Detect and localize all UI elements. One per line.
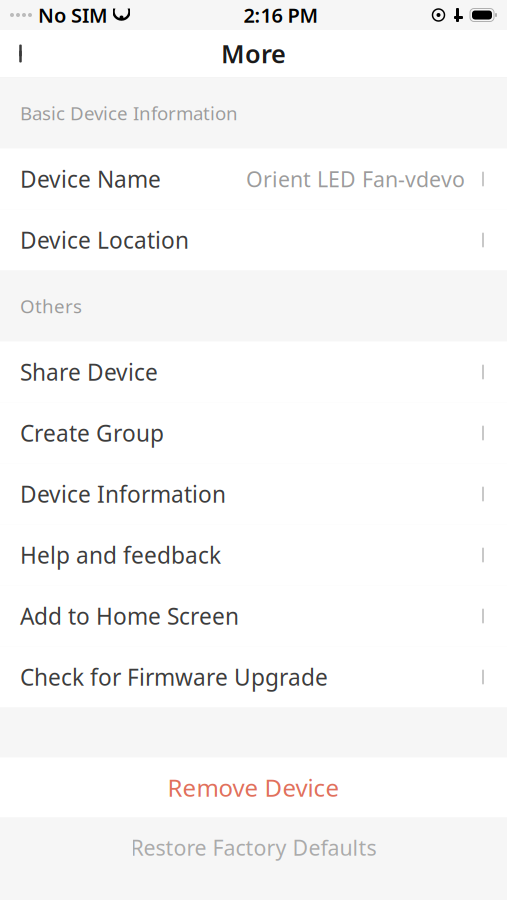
staticText: Add to Home Screen	[20, 601, 239, 631]
staticText: More	[221, 37, 286, 70]
staticText: Share Device	[20, 357, 158, 387]
button[interactable]: Add to Home Screen	[0, 585, 507, 646]
button[interactable]: Create Group	[0, 402, 507, 463]
button[interactable]: Remove Device	[0, 757, 507, 817]
staticText: Device Location	[20, 225, 189, 255]
staticText: Device Information	[20, 479, 226, 509]
button[interactable]: Device Location	[0, 209, 507, 270]
staticText: No SIM	[38, 2, 108, 28]
staticText: Remove Device	[167, 772, 339, 803]
staticText: Help and feedback	[20, 540, 221, 570]
staticText: Orient LED Fan-vdevo	[246, 165, 465, 193]
button[interactable]: Check for Firmware Upgrade	[0, 646, 507, 707]
button[interactable]: Device Information	[0, 463, 507, 524]
button[interactable]: Help and feedback	[0, 524, 507, 585]
button[interactable]: Share Device	[0, 341, 507, 402]
staticText: Create Group	[20, 418, 164, 448]
staticText: 2:16 PM	[243, 2, 318, 28]
staticText: Restore Factory Defaults	[130, 833, 376, 862]
button[interactable]: Device Name	[0, 148, 507, 209]
button[interactable]: Back	[0, 31, 44, 75]
button[interactable]: Restore Factory Defaults	[0, 817, 507, 877]
staticText: Others	[20, 294, 82, 318]
staticText: Basic Device Information	[20, 101, 238, 125]
staticText: Check for Firmware Upgrade	[20, 662, 328, 692]
staticText: Device Name	[20, 164, 161, 194]
